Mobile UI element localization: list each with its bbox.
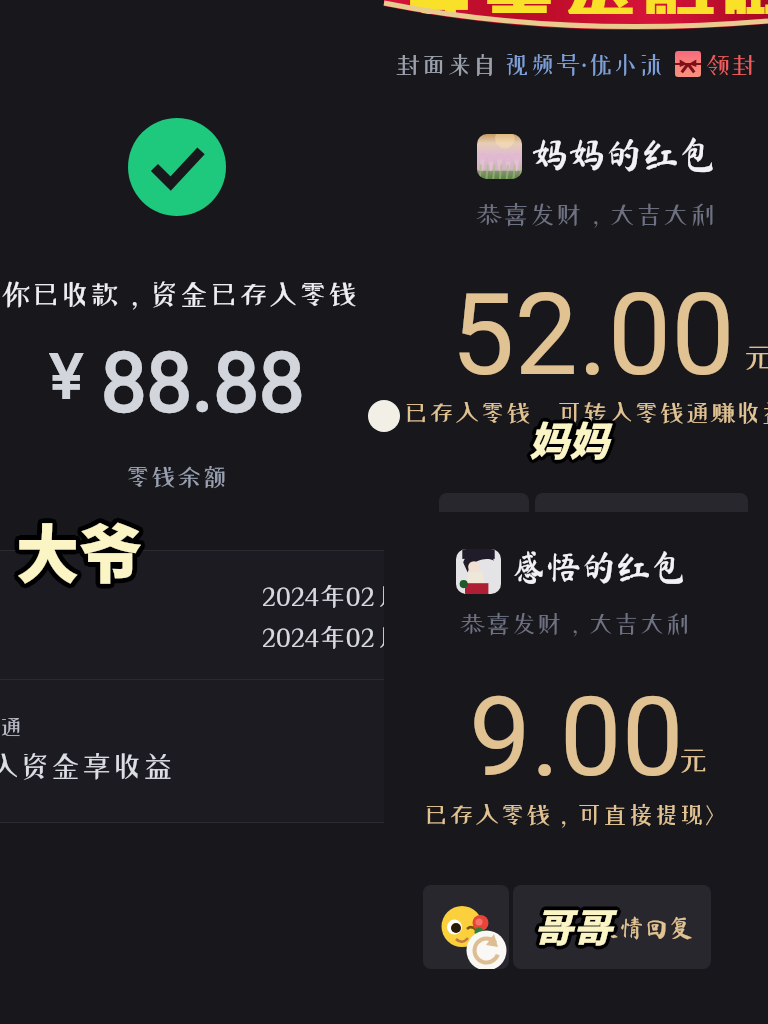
staticText: 哥哥 — [534, 896, 613, 952]
staticText: 大爷 — [16, 505, 142, 596]
staticText: 表情回复 — [594, 915, 695, 940]
staticText: 大爷 — [14, 501, 140, 592]
button[interactable]: Open red packet cover — [675, 51, 701, 77]
staticText: 大爷 — [16, 504, 142, 595]
staticText: 哥哥 — [533, 900, 612, 956]
staticText: 哥哥 — [538, 897, 617, 953]
button[interactable]: Sticker reply — [423, 885, 509, 969]
staticText: 哥哥 — [532, 898, 611, 954]
staticText: 妈妈 — [533, 410, 613, 468]
staticText: 哥哥 — [534, 901, 613, 957]
staticText: 妈妈 — [530, 411, 610, 469]
staticText: 大爷 — [18, 502, 144, 593]
staticText: 大爷 — [19, 504, 145, 595]
staticText: 妈妈 — [529, 408, 609, 466]
staticText: 恭喜发财啦 — [402, 0, 768, 14]
staticText: 大爷 — [16, 508, 142, 599]
staticText: 哥哥 — [536, 900, 615, 956]
staticText: 妈妈 — [527, 408, 607, 466]
staticText: 大爷 — [21, 504, 147, 595]
staticText: 领封 — [705, 52, 757, 77]
staticText: 妈妈 — [527, 409, 607, 467]
staticText: 大爷 — [15, 508, 141, 599]
staticText: 妈妈 — [528, 410, 608, 468]
staticText: 妈妈 — [532, 410, 612, 468]
staticText: 妈妈 — [530, 407, 610, 465]
staticText: 妈妈 — [528, 409, 608, 467]
staticText: 大爷 — [12, 505, 138, 596]
staticText: 妈妈 — [532, 412, 612, 470]
staticText: 哥哥 — [534, 893, 613, 949]
staticText: 零钱余额 — [125, 464, 228, 489]
staticText: 大爷 — [18, 501, 144, 592]
staticText: 妈妈 — [528, 411, 608, 469]
staticText: 妈妈 — [531, 408, 611, 466]
staticText: 大爷 — [16, 509, 142, 600]
staticText: 恭喜发财，大吉大利 — [476, 201, 716, 227]
staticText: 大爷 — [14, 502, 140, 593]
button[interactable]: 表情回复 — [513, 885, 711, 969]
staticText: 哥哥 — [531, 895, 610, 951]
staticText: 封面来自 — [395, 52, 504, 77]
staticText: 大爷 — [20, 506, 146, 597]
staticText: 大爷 — [14, 508, 140, 599]
staticText: 大爷 — [12, 502, 138, 593]
staticText: 大爷 — [18, 507, 144, 598]
staticText: 大爷 — [17, 508, 143, 599]
staticText: 哥哥 — [532, 896, 611, 952]
staticText: ¥ — [50, 340, 83, 413]
staticText: 哥哥 — [534, 895, 613, 951]
staticText: 哥哥 — [533, 895, 612, 951]
staticText: 大爷 — [14, 500, 140, 591]
staticText: 哥哥 — [537, 898, 616, 954]
staticText: 哥哥 — [535, 898, 614, 954]
staticText: 元 — [678, 746, 709, 776]
staticText: 大爷 — [18, 508, 144, 599]
staticText: 大爷 — [18, 503, 144, 594]
staticText: 大爷 — [19, 508, 145, 599]
staticText: 2024年02月1 — [262, 583, 410, 609]
staticText: 妈妈 — [531, 412, 611, 470]
staticText: 哥哥 — [536, 894, 615, 950]
staticText: 哥哥 — [533, 898, 612, 954]
staticText: 大爷 — [16, 507, 142, 598]
staticText: 哥哥 — [536, 896, 615, 952]
staticText: 妈妈 — [530, 413, 610, 471]
staticText: 妈妈 — [530, 409, 610, 467]
staticText: 大爷 — [15, 502, 141, 593]
staticText: 妈妈 — [526, 409, 606, 467]
staticText: 大爷 — [19, 501, 145, 592]
staticText: 哥哥 — [535, 894, 614, 950]
staticText: 妈妈 — [529, 414, 609, 472]
staticText: 感悟的红包 — [511, 549, 687, 584]
staticText: 大爷 — [17, 507, 143, 598]
staticText: 妈妈 — [531, 410, 611, 468]
staticText: 哥哥 — [535, 895, 614, 951]
staticText: 大爷 — [16, 506, 142, 597]
staticText: 大爷 — [12, 504, 138, 595]
staticText: 哥哥 — [534, 894, 613, 950]
staticText: 妈妈 — [527, 411, 607, 469]
staticText: 大爷 — [13, 502, 139, 593]
staticText: 哥哥 — [536, 899, 615, 955]
staticText: 大爷 — [20, 507, 146, 598]
staticText: 大爷 — [15, 500, 141, 591]
staticText: 大爷 — [13, 503, 139, 594]
staticText: 大爷 — [18, 500, 144, 591]
staticText: 妈妈 — [532, 408, 612, 466]
staticText: 大爷 — [13, 504, 139, 595]
staticText: 大爷 — [17, 504, 143, 595]
button[interactable]: Payment received — [128, 118, 226, 216]
staticText: 妈妈 — [532, 411, 612, 469]
staticText: 哥哥 — [534, 899, 613, 955]
staticText: 大爷 — [14, 503, 140, 594]
staticText: 已存入零钱，可直接提现〉 — [423, 802, 731, 827]
staticText: 2024年02月1 — [262, 624, 410, 650]
staticText: 大爷 — [20, 504, 146, 595]
staticText: 大爷 — [20, 505, 146, 596]
staticText: 妈妈 — [531, 411, 611, 469]
staticText: 妈妈 — [527, 410, 607, 468]
staticText: 妈妈 — [527, 413, 607, 471]
